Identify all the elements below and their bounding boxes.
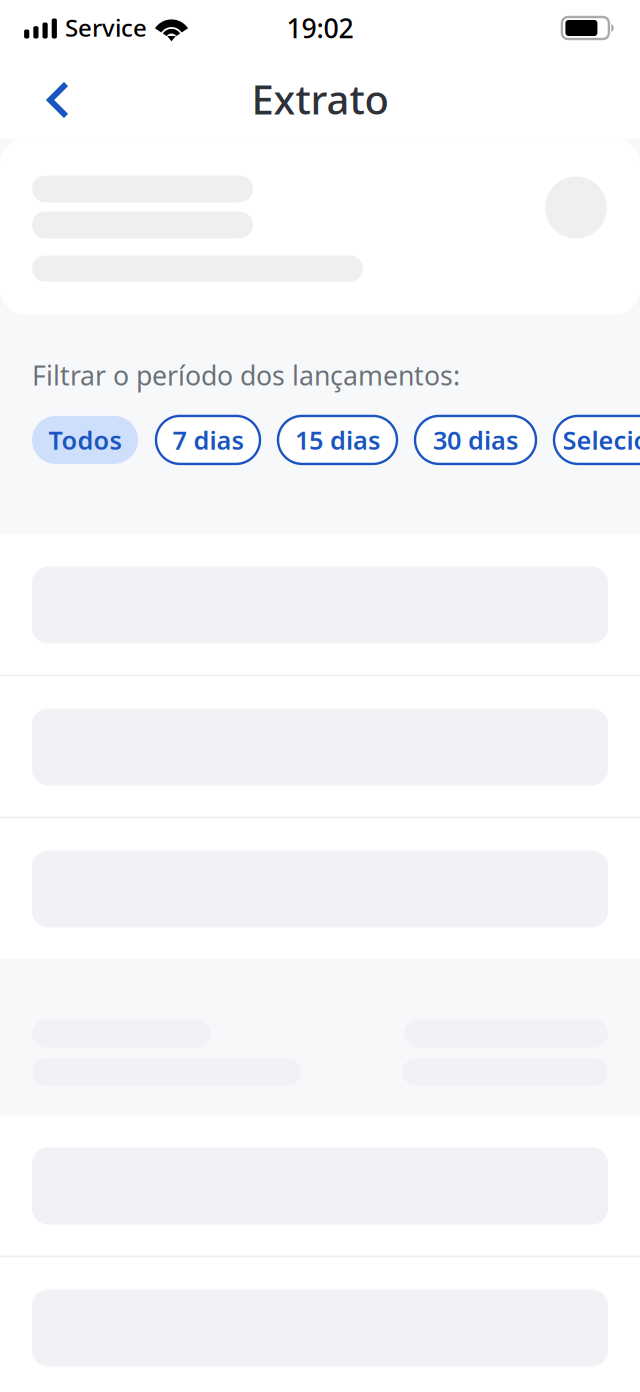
button[interactable]: 15 dias [278,416,397,464]
staticText: Extrato [251,72,388,125]
staticText: 19:02 [286,10,353,46]
staticText: Todos [48,423,121,457]
button[interactable]: 30 dias [415,416,536,464]
staticText: Filtrar o período dos lançamentos: [32,357,460,393]
staticText: 7 dias [172,423,243,457]
staticText: 30 dias [433,423,518,457]
button[interactable]: Selecionar período [554,416,640,464]
staticText: Selecionar período [562,423,640,457]
button[interactable]: Todos [32,416,138,464]
button[interactable]: 7 dias [156,416,260,464]
button[interactable]: Voltar [22,59,88,129]
staticText: 15 dias [295,423,380,457]
staticText: Service [65,12,147,43]
